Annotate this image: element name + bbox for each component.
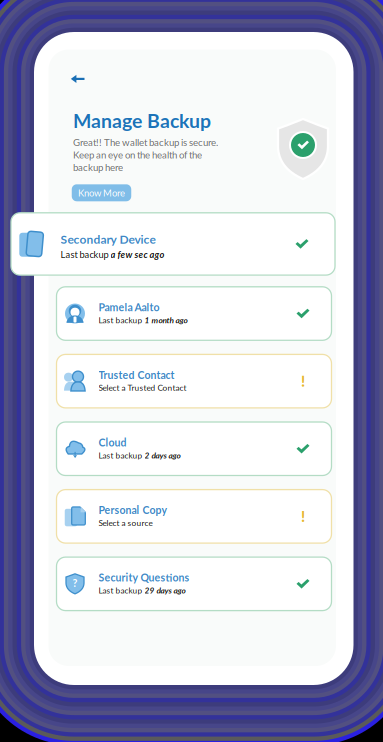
staticText: Cloud [98,436,126,449]
button[interactable]: Know More [72,184,131,201]
staticText: ! [301,507,305,525]
staticText: Select a Trusted Contact [98,383,186,392]
staticText: Personal Copy [98,504,167,516]
button[interactable]: ? [56,557,331,611]
staticText: Trusted Contact [98,368,174,381]
button[interactable]: Personal Copy [56,490,331,543]
staticText: Manage Backup [73,109,211,132]
staticText: Last backup 2 days ago [98,450,180,460]
staticText: Last backup 1 month ago [98,315,187,325]
staticText: Security Questions [98,571,189,584]
staticText: Keep an eye on the health of the [73,149,202,161]
staticText: ? [72,576,77,589]
button[interactable]: Pamela Aalto [56,287,331,340]
staticText: Pamela Aalto [98,301,159,313]
staticText: Secondary Device [60,232,155,246]
staticText: ! [301,372,305,390]
staticText: backup here [73,161,123,173]
button[interactable]: Cloud [56,422,331,475]
staticText: Know More [78,187,125,198]
staticText: Last backup a few sec ago [60,249,164,260]
staticText: Great!! The wallet backup is secure. [73,136,218,148]
staticText: Select a source [98,518,152,528]
button[interactable]: Secondary Device [11,213,335,275]
button[interactable]: Trusted Contact [56,354,331,408]
staticText: Last backup 29 days ago [98,585,185,595]
button[interactable]: Back [71,75,85,83]
